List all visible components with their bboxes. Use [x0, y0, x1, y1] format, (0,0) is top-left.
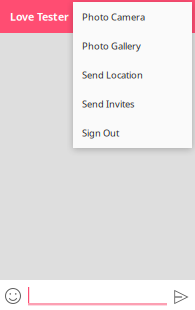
staticText: Photo Camera	[82, 11, 145, 23]
button[interactable]: Photo Gallery	[73, 31, 192, 60]
button[interactable]: Photo Camera	[73, 2, 192, 31]
button[interactable]: Send	[167, 280, 195, 310]
staticText: Love Tester	[10, 9, 69, 24]
button[interactable]: Sign Out	[73, 118, 192, 147]
button[interactable]	[26, 280, 167, 310]
staticText: Sign Out	[82, 127, 119, 139]
staticText: Photo Gallery	[82, 40, 141, 52]
button[interactable]: Send Invites	[73, 89, 192, 118]
button[interactable]: Send Location	[73, 60, 192, 89]
staticText: Send Location	[82, 69, 143, 81]
staticText: Send Invites	[82, 98, 134, 110]
button[interactable]: Emoji keyboard	[0, 280, 26, 310]
